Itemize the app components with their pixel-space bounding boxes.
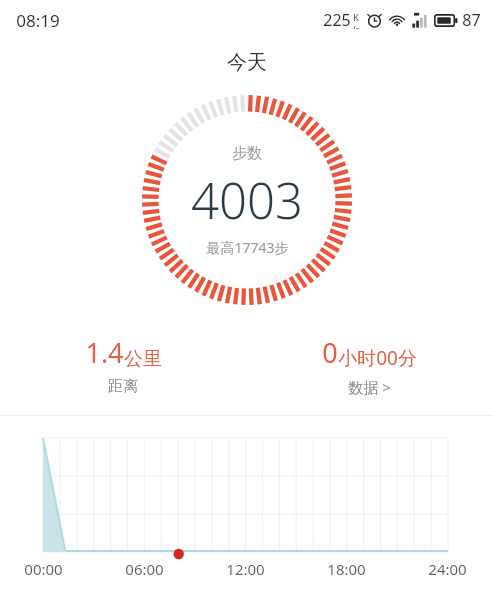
staticText: 数据 > <box>348 377 391 397</box>
button[interactable]: 0 <box>246 330 493 401</box>
staticText: 4003 <box>191 167 303 234</box>
button[interactable]: 1.4 <box>0 330 246 400</box>
staticText: 18:00 <box>327 559 366 579</box>
staticText: 08:19 <box>16 9 60 32</box>
staticText: 步数 <box>232 144 262 163</box>
staticText: 06:00 <box>125 559 164 579</box>
staticText: /s <box>352 23 360 29</box>
staticText: 00 <box>376 345 398 371</box>
staticText: 24:00 <box>428 559 467 579</box>
staticText: 距离 <box>108 377 138 396</box>
staticText: 分 <box>398 347 417 371</box>
staticText: 225 <box>323 9 351 31</box>
staticText: 12:00 <box>226 559 265 579</box>
staticText: 公里 <box>124 347 162 371</box>
button[interactable]: 步数 <box>141 94 353 306</box>
staticText: 87 <box>462 9 481 31</box>
staticText: 最高17743步 <box>206 238 289 257</box>
staticText: 今天 <box>227 50 267 75</box>
staticText: 0 <box>322 334 338 371</box>
staticText: K <box>353 11 359 23</box>
staticText: 00:00 <box>24 559 63 579</box>
staticText: 小时 <box>338 347 376 371</box>
staticText: 1.4 <box>85 334 124 371</box>
